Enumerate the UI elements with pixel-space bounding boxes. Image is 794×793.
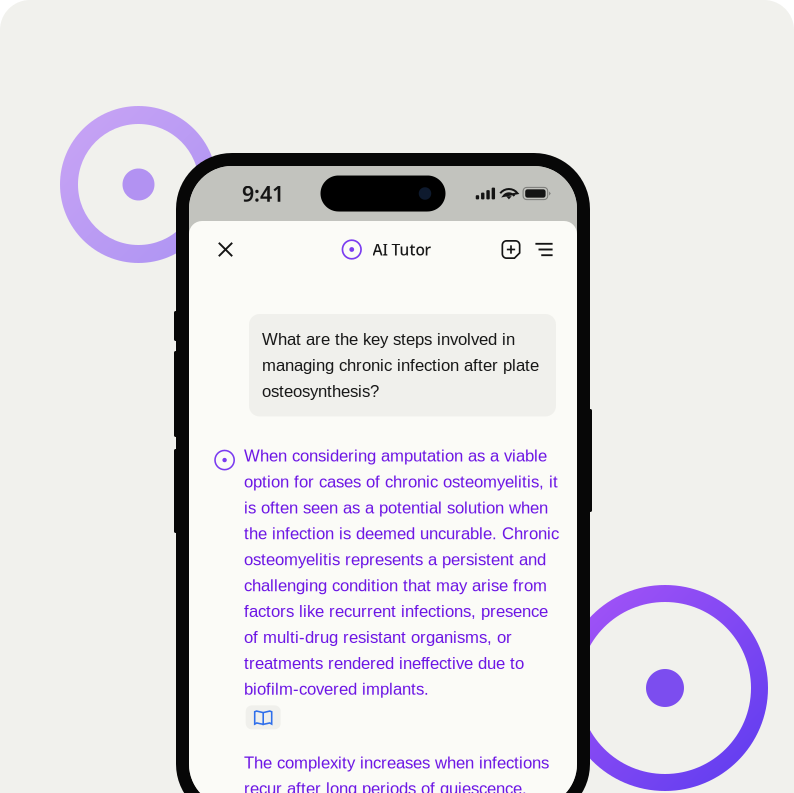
staticText: 9:41 [242,179,284,208]
staticText: When considering amputation as a viable … [244,446,559,698]
staticText: AI Tutor [373,239,432,260]
button[interactable]: Menu [528,229,560,269]
button[interactable]: Sources [246,705,281,729]
staticText: The complexity increases when infections… [244,753,549,793]
button[interactable]: Close [205,229,245,269]
staticText: What are the key steps involved in manag… [262,330,539,400]
button[interactable]: New chat [494,229,528,269]
